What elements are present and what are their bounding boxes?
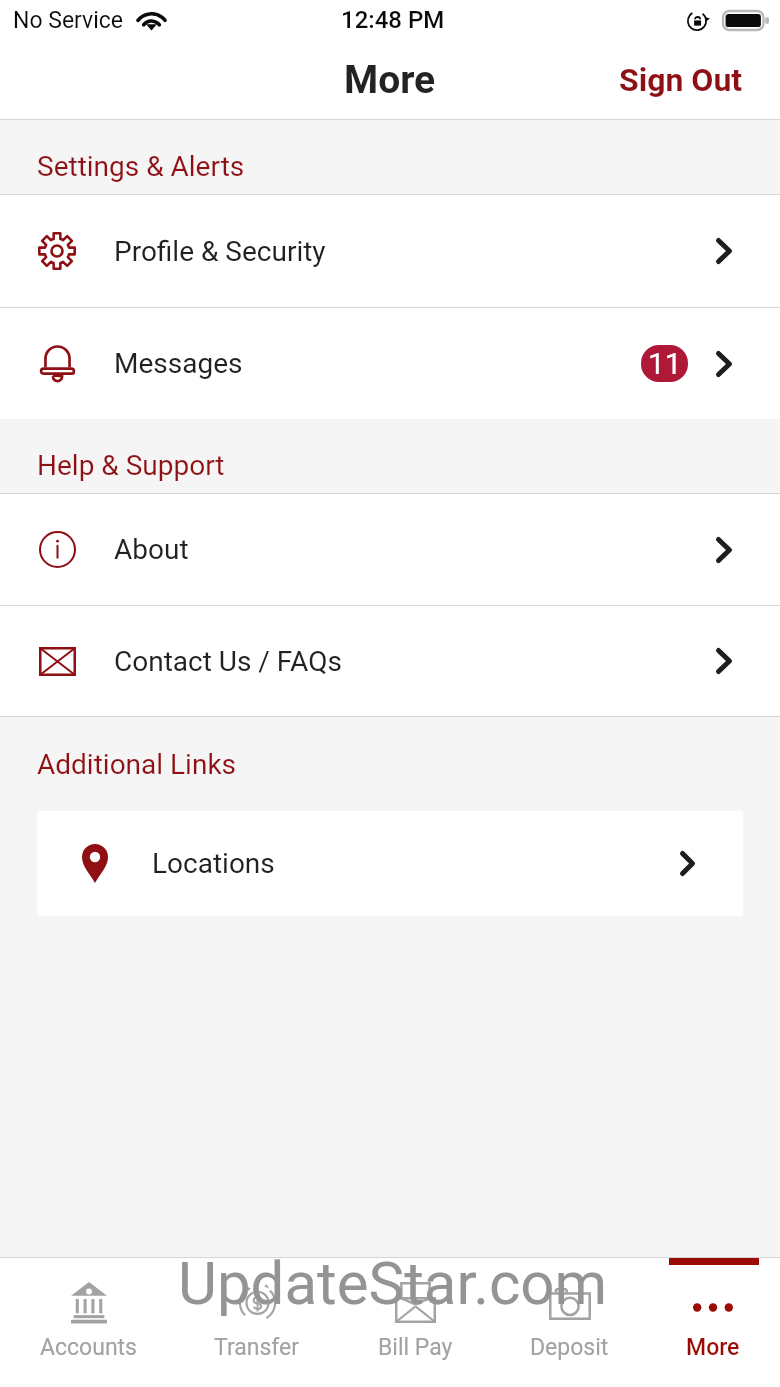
staticText: No Service [13,7,124,34]
button[interactable]: Messages [0,308,780,419]
staticText: Contact Us / FAQs [114,645,342,678]
staticText: Sign Out [619,61,743,99]
staticText: More [344,57,436,103]
staticText: Bill Pay [378,1334,453,1361]
staticText: About [114,533,189,566]
staticText: Additional Links [37,748,237,781]
staticText: Help & Support [37,449,225,482]
staticText: Deposit [530,1334,609,1361]
button[interactable]: Deposit [530,1258,609,1387]
button[interactable]: Locations [37,811,743,916]
button[interactable]: About [0,494,780,605]
button[interactable]: Profile & Security [0,195,780,307]
button[interactable]: Transfer [214,1258,300,1387]
staticText: UpdateStar.com [178,1248,608,1318]
button[interactable]: More [686,1258,740,1387]
staticText: Settings & Alerts [37,150,245,183]
staticText: 11 [648,346,682,381]
button[interactable]: Contact Us / FAQs [0,606,780,716]
staticText: Profile & Security [114,235,326,268]
button[interactable]: Bill Pay [378,1258,453,1387]
staticText: Accounts [40,1334,137,1361]
staticText: Messages [114,347,243,380]
button[interactable]: Accounts [40,1258,137,1387]
staticText: Locations [152,847,275,880]
staticText: Transfer [214,1334,300,1361]
staticText: 12:48 PM [341,6,445,34]
staticText: More [686,1334,740,1361]
button[interactable]: Sign Out [593,47,780,113]
